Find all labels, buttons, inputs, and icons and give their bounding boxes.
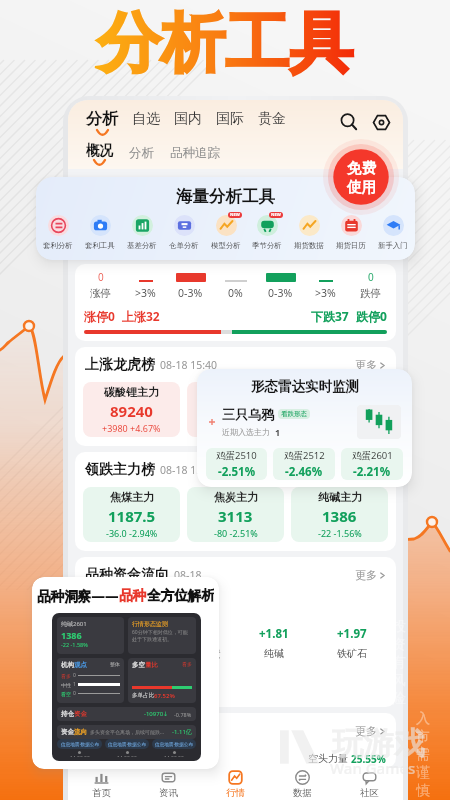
button[interactable]: 碳酸锂主力 <box>83 382 180 437</box>
button[interactable]: 自选 <box>132 110 160 133</box>
button[interactable]: 品种追踪 <box>170 145 220 161</box>
staticText: 0 <box>98 270 104 283</box>
staticText: 近期入选主力 <box>222 427 270 437</box>
button[interactable]: 鸡蛋2512 <box>273 448 335 480</box>
staticText: 持仓 <box>61 710 74 718</box>
staticText: -22 -1.58% <box>61 641 88 648</box>
button[interactable]: 焦煤主力 <box>83 487 180 542</box>
button[interactable]: +1.78 <box>83 626 154 660</box>
staticText: 更多 <box>355 568 377 582</box>
staticText: 品种资金流向 <box>85 566 169 584</box>
staticText: 跌停0 <box>356 308 387 324</box>
button[interactable]: 国内 <box>174 110 202 133</box>
button[interactable]: 焦炭主力 <box>187 487 284 542</box>
staticText: 资讯 <box>159 787 178 799</box>
staticText: 1386 <box>61 629 82 641</box>
staticText: 更多 <box>355 463 377 477</box>
staticText: 套利工具 <box>85 241 115 250</box>
staticText: +1.78 <box>104 626 134 642</box>
staticText: 空头力量 <box>308 752 348 765</box>
staticText: +26 +2.44% <box>315 422 364 434</box>
button[interactable]: +1.97 <box>316 626 388 660</box>
staticText: 三十年国债 <box>171 647 221 660</box>
staticText: 数据 <box>293 787 312 799</box>
staticText: -2.46% <box>285 464 323 480</box>
button[interactable]: 基差分析 <box>127 215 157 250</box>
button[interactable]: 鸡蛋2510 <box>206 448 267 480</box>
button[interactable]: 棉花主力 <box>187 382 284 437</box>
staticText: 67.52% <box>154 692 175 700</box>
button[interactable]: 数据 <box>269 768 336 800</box>
staticText: 纯碱主力 <box>318 490 362 504</box>
button[interactable]: 新手入门 <box>378 215 408 250</box>
button[interactable]: 鸡蛋2601 <box>341 448 403 480</box>
staticText: 新手入门 <box>378 241 408 250</box>
button[interactable]: 更多 <box>355 463 386 477</box>
button[interactable]: 套利分析 <box>43 215 73 250</box>
button[interactable]: 国际 <box>216 110 244 133</box>
button[interactable]: 分析 <box>86 109 118 134</box>
button[interactable]: 首页 <box>68 768 135 800</box>
staticText: 整体 <box>110 661 120 667</box>
button[interactable]: 更多 <box>355 724 386 738</box>
staticText: +3980 +4.67% <box>102 422 161 434</box>
staticText: -2.21% <box>353 464 391 480</box>
button[interactable]: +1.80 <box>160 626 232 660</box>
staticText: 玻璃主力 <box>318 385 362 399</box>
staticText: 铁矿石 <box>337 647 367 660</box>
button[interactable]: 搜索 <box>337 110 361 134</box>
button[interactable]: 资讯 <box>135 768 202 800</box>
button[interactable]: 更多 <box>355 358 386 372</box>
staticText: -2.51% <box>218 464 256 480</box>
button[interactable]: 期货数据 <box>294 215 324 250</box>
button[interactable]: 套利工具 <box>85 215 115 250</box>
staticText: 上涨龙虎榜 <box>85 356 155 374</box>
staticText: 更多 <box>355 724 377 738</box>
staticText: 使用 <box>347 178 376 196</box>
button[interactable]: NEW <box>211 215 241 250</box>
staticText: -10970↓ <box>144 710 169 718</box>
staticText: 慎 <box>416 782 430 800</box>
staticText: 分析工具 <box>97 3 353 84</box>
staticText: 0 <box>368 270 374 283</box>
staticText: 期货日历 <box>336 241 366 250</box>
staticText: -80 -2.51% <box>214 527 258 539</box>
staticText: NEW <box>230 212 240 218</box>
staticText: Wan Games <box>330 758 416 778</box>
staticText: 0 <box>73 690 76 697</box>
staticText: 国际 <box>216 110 244 128</box>
staticText: 13985 <box>214 401 257 421</box>
staticText: -36.0 -2.94% <box>106 527 158 539</box>
staticText: 下跌37 <box>311 308 349 324</box>
button[interactable]: 行情 <box>202 768 269 800</box>
button[interactable]: 玻璃主力 <box>291 382 388 437</box>
button[interactable]: 社区 <box>336 768 403 800</box>
staticText: 多空 <box>132 661 145 669</box>
button[interactable]: 期货日历 <box>336 215 366 250</box>
staticText: 1 <box>275 426 281 438</box>
staticText: 14:00:00 <box>70 755 90 757</box>
button[interactable]: +1.81 <box>238 626 310 660</box>
button[interactable]: 分析 <box>129 145 154 161</box>
staticText: 碳酸锂主力 <box>104 385 159 399</box>
staticText: 玩游戏 <box>332 724 425 763</box>
staticText: 看多 <box>61 673 71 679</box>
button[interactable]: 免费 <box>347 159 376 196</box>
staticText: 仓单分析 <box>169 241 199 250</box>
button[interactable]: 纯碱主力 <box>291 487 388 542</box>
button[interactable]: 更多 <box>355 568 386 582</box>
button[interactable]: 仓单分析 <box>169 215 199 250</box>
button[interactable]: NEW <box>252 215 282 250</box>
staticText: 海量分析工具 <box>176 186 275 207</box>
staticText: 14:00:00 <box>164 755 184 757</box>
button[interactable]: 概况 <box>86 142 113 164</box>
staticText: 谨 <box>416 764 430 782</box>
staticText: 观点 <box>74 661 87 669</box>
button[interactable]: 贵金 <box>258 110 286 133</box>
button[interactable]: 设置 <box>369 110 393 134</box>
staticText: >3% <box>135 286 156 300</box>
staticText: 0 <box>73 672 76 679</box>
staticText: 自选 <box>132 110 160 128</box>
staticText: 领跌主力榜 <box>85 461 155 479</box>
